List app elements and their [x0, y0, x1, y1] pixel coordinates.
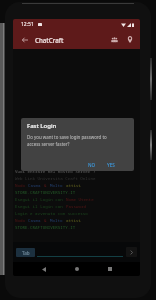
- button[interactable]: Tab: [16, 248, 35, 257]
- staticText: Fast Login: [27, 122, 57, 130]
- staticText: attivi: [66, 218, 82, 224]
- staticText: Web Link Universita Craft Online: [15, 176, 96, 182]
- staticText: Nodo: [15, 183, 28, 189]
- button[interactable]: Back: [37, 262, 51, 276]
- button[interactable]: Home: [70, 262, 84, 276]
- button[interactable]: NO: [85, 160, 99, 170]
- staticText: Tab: [22, 250, 30, 256]
- button[interactable]: Location: [123, 33, 136, 46]
- staticText: Casma: [28, 183, 44, 189]
- button[interactable]: Recent apps: [103, 262, 117, 276]
- staticText: 12:51: [21, 21, 34, 28]
- staticText: Esegui il Login con: [15, 204, 66, 210]
- staticText: Molto: [50, 218, 66, 224]
- staticText: Vuoi entrare nel nostro Server ?: [15, 169, 96, 175]
- staticText: NO: [88, 162, 96, 168]
- staticText: &: [44, 183, 50, 189]
- button[interactable]: Back: [18, 33, 31, 46]
- staticText: Password: [66, 204, 87, 210]
- staticText: STORE.CRAFTUNIVERSITY.IT: [15, 190, 76, 196]
- staticText: Molto: [50, 183, 66, 189]
- staticText: Login e avvenuto con successo: [15, 211, 88, 217]
- button[interactable]: YES: [104, 160, 118, 170]
- staticText: ChatCraft: [35, 36, 64, 44]
- staticText: Nodo: [15, 218, 28, 224]
- staticText: YES: [107, 162, 115, 168]
- staticText: STORE.CRAFTUNIVERSITY.IT: [15, 225, 76, 231]
- staticText: Do you want to save login password to ac…: [27, 134, 107, 148]
- button[interactable]: Send: [126, 247, 137, 257]
- staticText: Casma: [28, 218, 44, 224]
- staticText: &: [44, 218, 50, 224]
- staticText: Esegui il Login con: [15, 197, 66, 203]
- staticText: Nome Utente: [66, 197, 94, 203]
- button[interactable]: Users online: [108, 33, 121, 46]
- staticText: attivi: [66, 183, 82, 189]
